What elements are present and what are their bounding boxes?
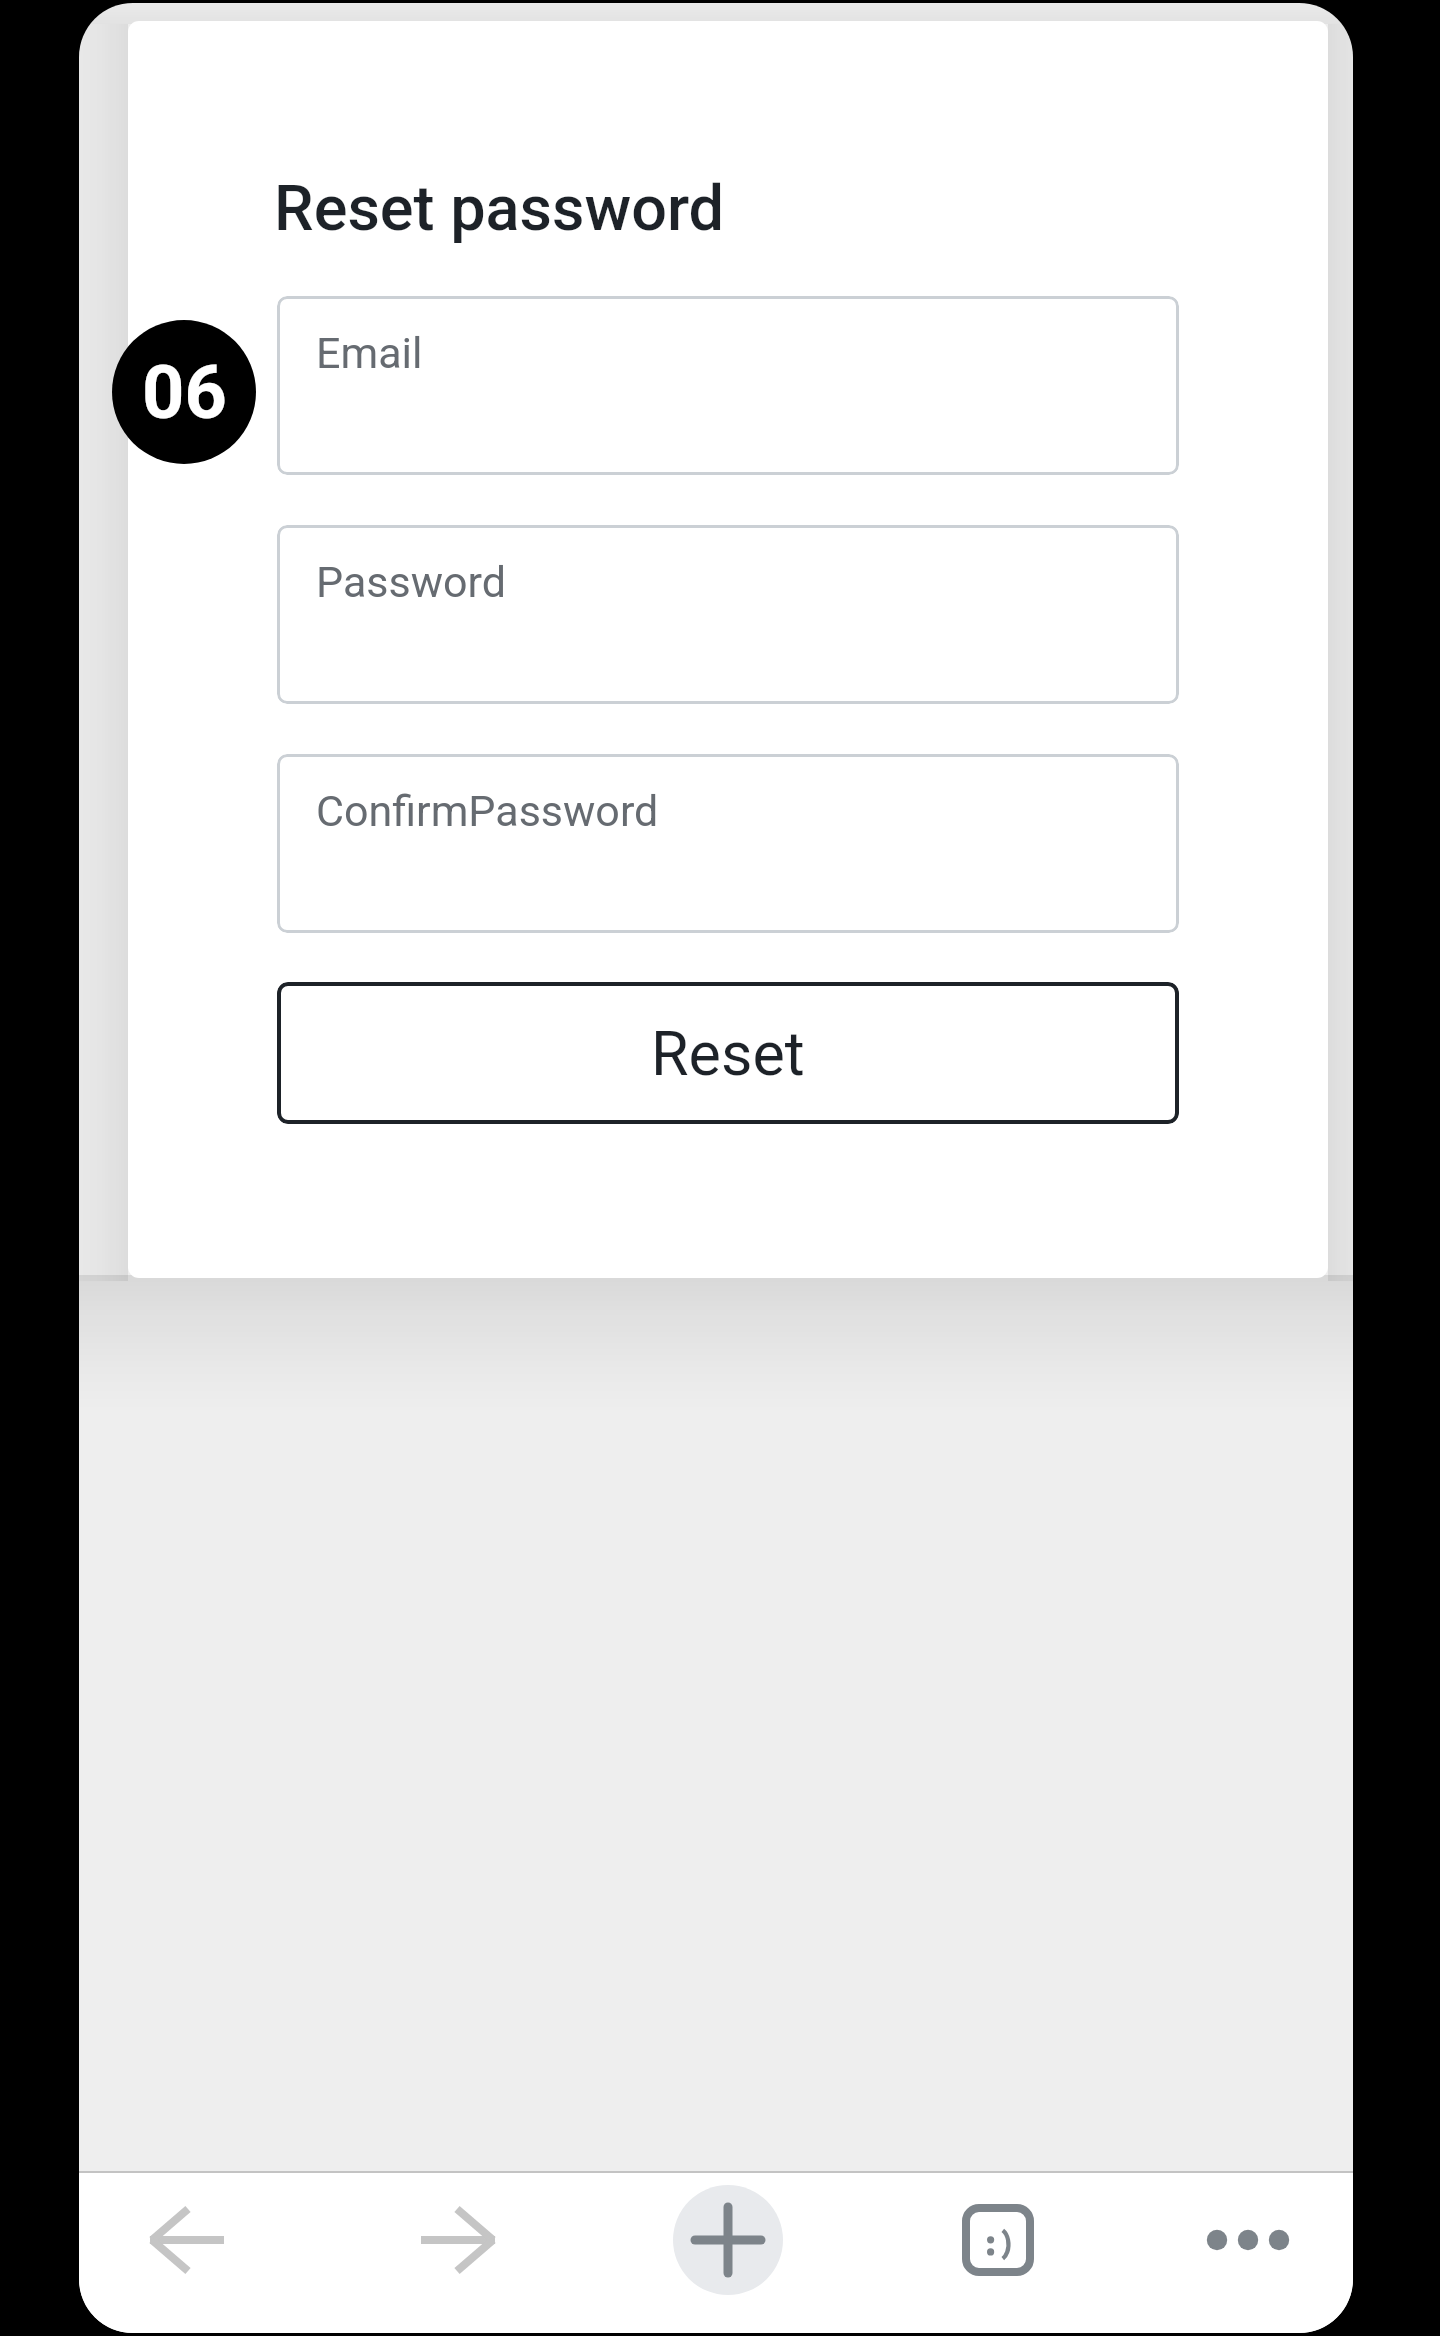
staticText: Email: [316, 328, 423, 378]
button[interactable]: Password: [277, 525, 1179, 704]
button[interactable]: Email: [277, 296, 1179, 475]
button[interactable]: ConfirmPassword: [277, 754, 1179, 933]
button[interactable]: Back: [107, 2185, 267, 2295]
staticText: Reset: [651, 1018, 805, 1089]
button[interactable]: More options: [1168, 2190, 1328, 2290]
staticText: ConfirmPassword: [316, 786, 659, 836]
button[interactable]: Reset: [277, 982, 1179, 1124]
button[interactable]: Reactions: [918, 2190, 1078, 2290]
staticText: Password: [316, 557, 506, 607]
staticText: 06: [142, 349, 227, 436]
button[interactable]: Forward: [378, 2185, 538, 2295]
button[interactable]: Add: [673, 2185, 783, 2295]
staticText: Reset password: [274, 172, 725, 246]
